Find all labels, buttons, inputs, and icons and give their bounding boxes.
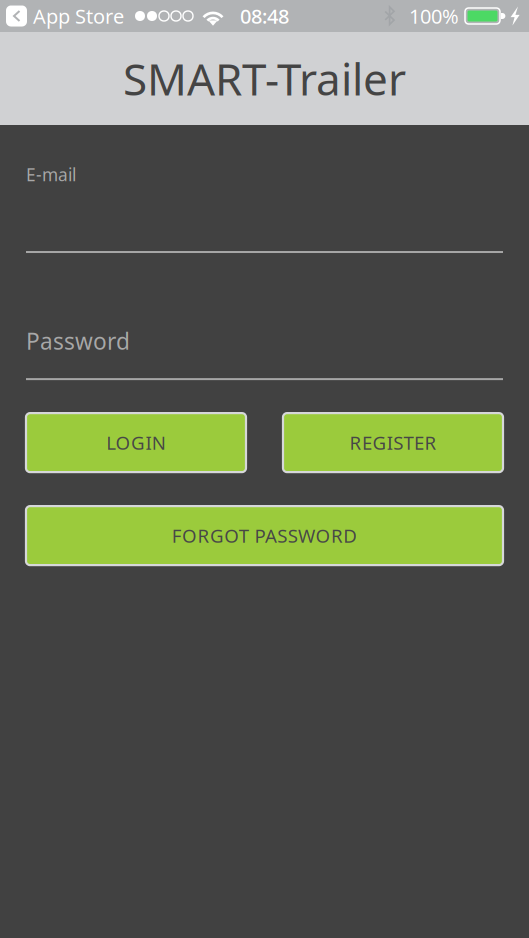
staticText: 100% [409, 3, 459, 29]
button[interactable]: LOGIN [26, 413, 246, 472]
button[interactable]: FORGOT PASSWORD [26, 506, 503, 565]
staticText: 08:48 [240, 3, 289, 29]
staticText: LOGIN [106, 430, 166, 455]
button[interactable]: REGISTER [283, 413, 503, 472]
staticText: REGISTER [350, 430, 436, 455]
button[interactable]: App Store [0, 3, 124, 29]
button[interactable]: Password [26, 326, 503, 380]
button[interactable]: E-mail [26, 163, 503, 253]
staticText: SMART-Trailer [123, 49, 406, 108]
staticText: App Store [33, 3, 124, 29]
staticText: E-mail [26, 163, 76, 186]
staticText: FORGOT PASSWORD [172, 523, 357, 548]
staticText: Password [26, 326, 130, 356]
